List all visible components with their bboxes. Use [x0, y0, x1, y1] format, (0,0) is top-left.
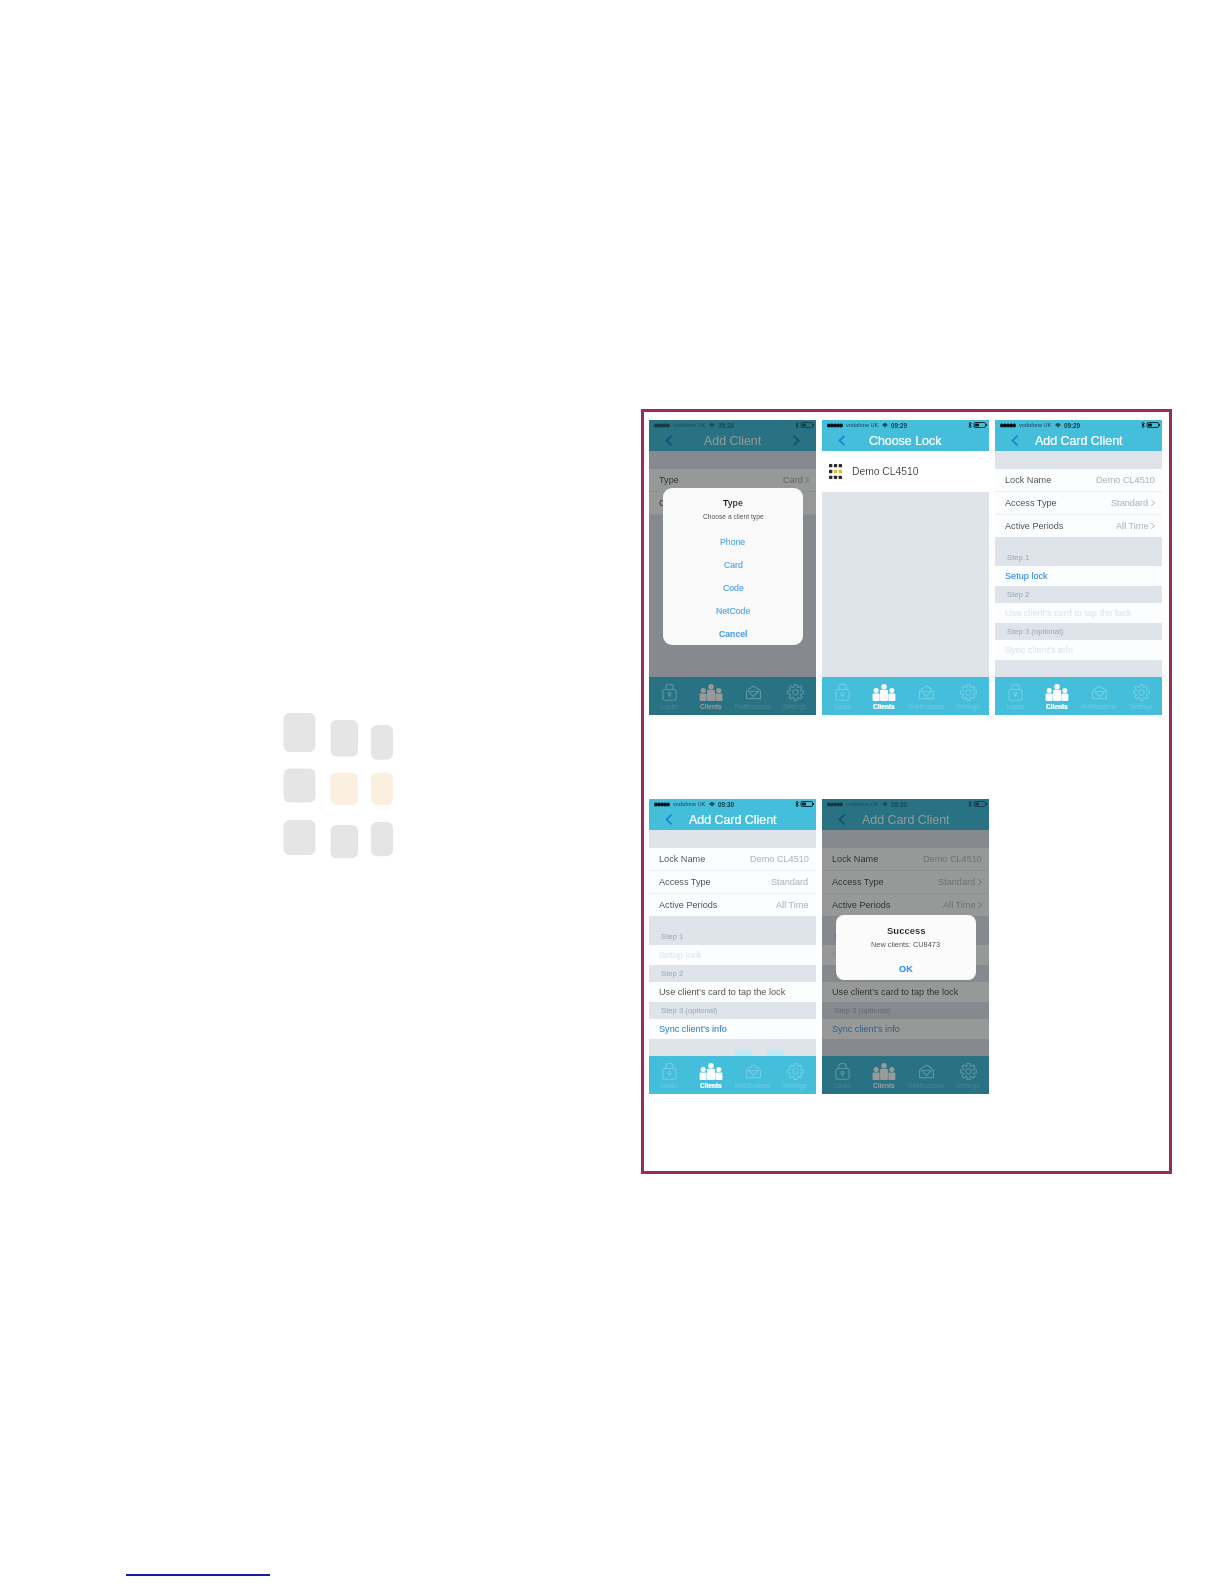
staticText: vodafone UK — [1019, 422, 1052, 428]
button[interactable]: Back — [649, 430, 689, 451]
button[interactable]: Access Type — [995, 492, 1162, 514]
staticText: Clients — [700, 1082, 722, 1089]
button[interactable]: Settings — [947, 1056, 989, 1094]
staticText: Step 2 — [1007, 590, 1030, 599]
button[interactable]: Lock Name — [649, 848, 816, 870]
button[interactable]: Sync client's info — [649, 1019, 816, 1039]
staticText: Settings — [783, 703, 807, 710]
staticText: Settings — [956, 1082, 980, 1089]
staticText: Demo CL4510 — [1096, 475, 1155, 485]
button[interactable]: Card — [663, 553, 803, 576]
staticText: Notifications — [735, 1082, 771, 1089]
button[interactable]: Active Periods — [649, 894, 816, 916]
button[interactable]: Access Type — [649, 871, 816, 893]
button[interactable]: Settings — [947, 677, 989, 715]
button[interactable]: Setup lock — [649, 945, 816, 965]
button[interactable]: Use client's card to tap the lock — [995, 603, 1162, 623]
button[interactable]: Back — [995, 430, 1035, 451]
staticText: Settings — [783, 1082, 807, 1089]
button[interactable]: Notifications — [732, 677, 774, 715]
button[interactable]: Notifications — [905, 1056, 947, 1094]
staticText: 09:28 — [718, 422, 735, 429]
button[interactable]: Next — [776, 430, 816, 451]
button[interactable]: Back — [822, 430, 862, 451]
staticText: Notifications — [735, 703, 771, 710]
staticText: Clients — [700, 703, 722, 710]
button[interactable]: Lock Name — [995, 469, 1162, 491]
button[interactable]: Sync client's info — [822, 1019, 989, 1039]
staticText: Clients — [873, 1082, 895, 1089]
button[interactable]: Clients — [690, 677, 732, 715]
staticText: Step 1 — [661, 932, 684, 941]
button[interactable]: Notifications — [732, 1056, 774, 1094]
staticText: Active Periods — [832, 900, 891, 910]
button[interactable]: Lock Name — [822, 848, 989, 870]
staticText: Type — [723, 498, 743, 508]
button[interactable]: Locks — [995, 677, 1036, 715]
button[interactable]: Active Periods — [995, 515, 1162, 537]
button[interactable]: Sync client's info — [995, 640, 1162, 660]
button[interactable]: Type — [649, 469, 816, 491]
staticText: Demo CL4510 — [923, 854, 982, 864]
button[interactable]: Back — [822, 809, 862, 830]
staticText: Settings — [1129, 703, 1153, 710]
button[interactable]: Demo CL4510 — [822, 451, 989, 492]
button[interactable]: OK — [836, 961, 976, 977]
button[interactable]: Settings — [774, 1056, 816, 1094]
staticText: Setup lock — [1005, 571, 1048, 581]
button[interactable]: Settings — [1120, 677, 1162, 715]
button[interactable]: Setup lock — [822, 945, 989, 965]
staticText: Use client's card to tap the lock — [659, 987, 786, 997]
button[interactable]: Locks — [822, 677, 863, 715]
button[interactable]: Code — [663, 576, 803, 599]
staticText: Access Type — [659, 877, 711, 887]
staticText: Sync client's info — [832, 1024, 900, 1034]
button[interactable]: Clients — [1036, 677, 1078, 715]
staticText: Step 3 (optional) — [1007, 627, 1064, 636]
button[interactable]: Clients — [863, 1056, 905, 1094]
staticText: Card — [724, 560, 743, 570]
staticText: Sync client's info — [659, 1024, 727, 1034]
button[interactable]: Locks — [649, 1056, 690, 1094]
staticText: vodafone UK — [673, 801, 706, 807]
staticText: Clients — [1046, 703, 1068, 710]
staticText: Access Type — [832, 877, 884, 887]
button[interactable]: Notifications — [905, 677, 947, 715]
staticText: Notifications — [908, 703, 944, 710]
button[interactable]: Locks — [822, 1056, 863, 1094]
staticText: Sync client's info — [1005, 645, 1073, 655]
staticText: All Time — [943, 900, 976, 910]
staticText: Active Periods — [1005, 521, 1064, 531]
staticText: C — [659, 498, 666, 508]
button[interactable]: Setup lock — [995, 566, 1162, 586]
staticText: Step 3 (optional) — [834, 1006, 891, 1015]
button[interactable]: C — [649, 492, 816, 514]
staticText: Choose a client type — [703, 513, 764, 520]
button[interactable]: Access Type — [822, 871, 989, 893]
button[interactable]: Clients — [690, 1056, 732, 1094]
button[interactable]: Active Periods — [822, 894, 989, 916]
button[interactable]: Clients — [863, 677, 905, 715]
staticText: Notifications — [908, 1082, 944, 1089]
staticText: Lock Name — [832, 854, 879, 864]
staticText: Locks — [661, 1082, 678, 1089]
button[interactable]: Use client's card to tap the lock — [649, 982, 816, 1002]
button[interactable]: Phone — [663, 530, 803, 553]
button[interactable]: NetCode — [663, 599, 803, 622]
staticText: Notifications — [1081, 703, 1117, 710]
staticText: Lock Name — [1005, 475, 1052, 485]
button[interactable]: Cancel — [663, 622, 803, 645]
button[interactable]: Back — [649, 809, 689, 830]
staticText: Use client's card to tap the lock — [832, 987, 959, 997]
staticText: Standard — [938, 877, 976, 887]
button[interactable]: Locks — [649, 677, 690, 715]
staticText: Step 1 — [1007, 553, 1030, 562]
staticText: Demo CL4510 — [852, 466, 919, 478]
staticText: Setup lock — [832, 950, 875, 960]
staticText: Step 2 — [834, 969, 857, 978]
button[interactable]: Notifications — [1078, 677, 1120, 715]
staticText: Locks — [834, 703, 851, 710]
button[interactable]: Use client's card to tap the lock — [822, 982, 989, 1002]
button[interactable]: Settings — [774, 677, 816, 715]
staticText: Lock Name — [659, 854, 706, 864]
